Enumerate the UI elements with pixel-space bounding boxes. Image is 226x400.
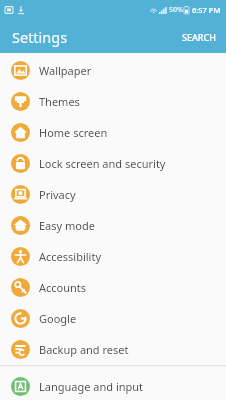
button[interactable]: SEARCH — [172, 23, 226, 51]
staticText: Backup and reset — [39, 342, 129, 357]
staticText: 6:57 PM — [192, 5, 221, 15]
button[interactable]: Wallpaper — [0, 55, 226, 86]
button[interactable]: Language and input — [0, 372, 226, 400]
button[interactable]: Accounts — [0, 272, 226, 303]
staticText: Accounts — [39, 280, 87, 295]
staticText: Google — [39, 311, 77, 326]
staticText: Themes — [39, 94, 80, 109]
staticText: Settings — [12, 27, 68, 47]
button[interactable]: Home screen — [0, 117, 226, 148]
button[interactable]: Easy mode — [0, 210, 226, 241]
staticText: Accessibility — [39, 249, 102, 264]
button[interactable]: Privacy — [0, 179, 226, 210]
button[interactable]: Accessibility — [0, 241, 226, 272]
staticText: 50% — [169, 5, 183, 15]
button[interactable]: Backup and reset — [0, 334, 226, 365]
staticText: Lock screen and security — [39, 156, 166, 171]
staticText: Language and input — [39, 379, 144, 394]
staticText: Home screen — [39, 125, 108, 140]
staticText: Privacy — [39, 187, 76, 202]
staticText: Wallpaper — [39, 63, 92, 78]
button[interactable]: Google — [0, 303, 226, 334]
button[interactable]: Lock screen and security — [0, 148, 226, 179]
staticText: Easy mode — [39, 218, 95, 233]
staticText: SEARCH — [182, 31, 216, 43]
button[interactable]: Themes — [0, 86, 226, 117]
